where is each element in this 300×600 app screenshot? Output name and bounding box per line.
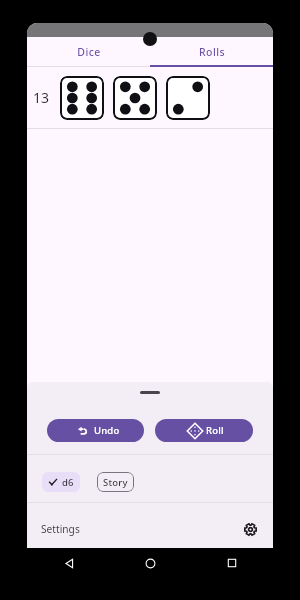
staticText: Undo bbox=[94, 424, 120, 437]
staticText: Dice bbox=[77, 45, 101, 59]
button[interactable]: Rolls bbox=[150, 37, 273, 67]
staticText: Rolls bbox=[199, 45, 225, 59]
button[interactable]: Die 6 bbox=[60, 76, 104, 120]
button[interactable]: Story bbox=[97, 472, 134, 492]
staticText: d6 bbox=[62, 476, 74, 489]
staticText: Settings bbox=[41, 522, 80, 536]
button[interactable]: Settings bbox=[241, 520, 259, 538]
button[interactable]: Recent apps bbox=[219, 550, 245, 576]
button[interactable]: Back bbox=[56, 550, 82, 576]
button[interactable]: Die 5 bbox=[113, 76, 157, 120]
button[interactable]: Settings bbox=[27, 503, 273, 548]
button[interactable]: Undo bbox=[47, 419, 144, 442]
button[interactable]: Roll bbox=[155, 419, 253, 442]
staticText: Story bbox=[103, 476, 128, 489]
button[interactable]: Die 2 bbox=[166, 76, 210, 120]
button[interactable]: Dice bbox=[27, 37, 150, 67]
button[interactable]: Home bbox=[137, 550, 163, 576]
button[interactable]: d6 bbox=[42, 472, 80, 492]
staticText: Roll bbox=[206, 424, 224, 437]
staticText: 13 bbox=[33, 88, 50, 107]
